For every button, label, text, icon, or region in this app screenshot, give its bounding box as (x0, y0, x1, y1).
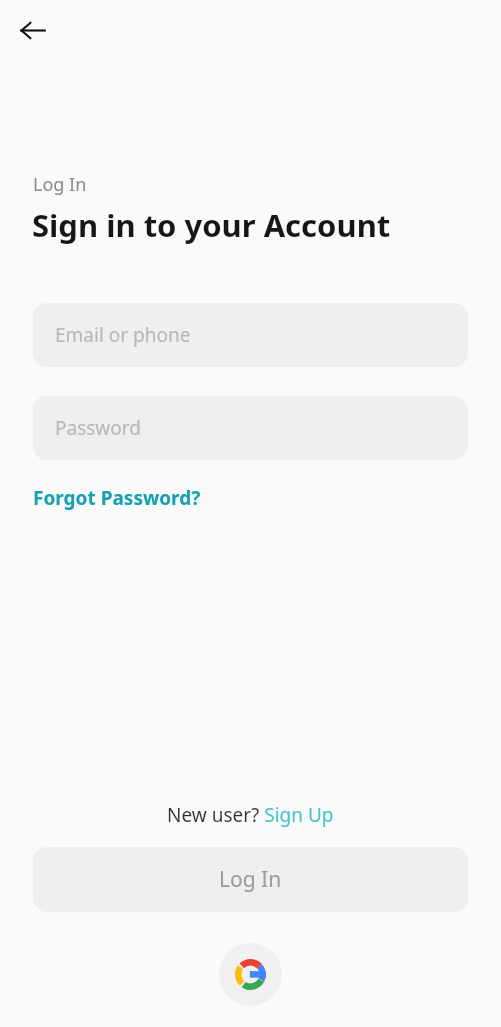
button[interactable]: Email or phone (33, 303, 468, 367)
button[interactable]: Log In (33, 847, 468, 912)
staticText: Log In (219, 865, 282, 894)
button[interactable]: Sign in with Google (219, 943, 282, 1006)
button[interactable]: New user? Sign Up (167, 802, 334, 828)
button[interactable]: Forgot Password? (33, 485, 201, 511)
staticText: New user? Sign Up (167, 802, 334, 828)
staticText: Password (55, 415, 141, 441)
staticText: Sign in to your Account (32, 204, 391, 246)
staticText: Email or phone (55, 322, 191, 348)
button[interactable]: Back (6, 4, 58, 56)
staticText: Forgot Password? (33, 485, 201, 511)
staticText: Log In (33, 172, 87, 197)
button[interactable]: Password (33, 396, 468, 460)
